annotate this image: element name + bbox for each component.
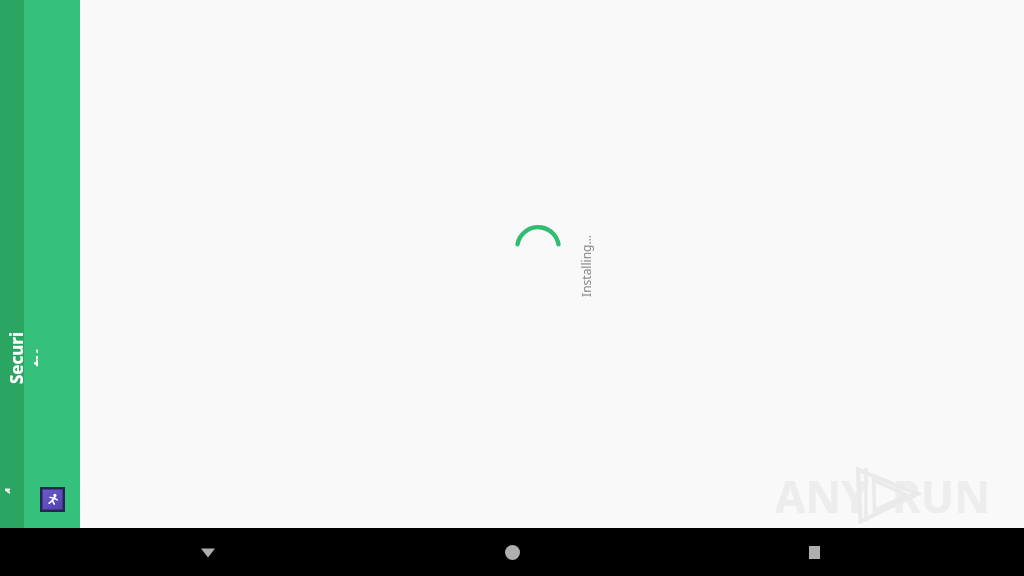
button[interactable]: Recent apps — [794, 532, 834, 572]
staticText: Better Security — [0, 330, 38, 386]
staticText: 12:54 — [0, 470, 10, 494]
staticText: Installing… — [578, 235, 594, 297]
button[interactable]: Back — [188, 532, 228, 572]
button[interactable]: Home — [492, 532, 532, 572]
button[interactable]: Better Security — [24, 0, 80, 528]
staticText: ANY — [775, 466, 869, 524]
staticText: RUN — [892, 466, 990, 524]
button[interactable]: App icon — [40, 487, 65, 512]
